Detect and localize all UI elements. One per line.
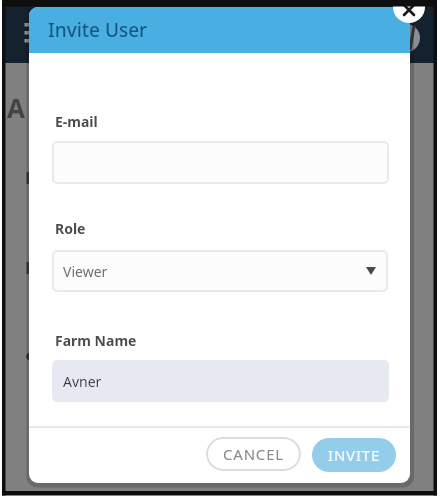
button[interactable] <box>52 141 389 184</box>
button[interactable]: Avner <box>52 360 389 402</box>
button[interactable]: INVITE <box>312 438 396 472</box>
staticText: Invite User <box>48 17 148 43</box>
staticText: Viewer <box>63 262 108 281</box>
button[interactable]: CANCEL <box>206 437 301 471</box>
button[interactable] <box>393 0 425 23</box>
staticText: E-mail <box>55 112 98 131</box>
button[interactable]: Viewer <box>52 250 388 292</box>
staticText: Avner <box>63 372 102 391</box>
staticText: Farm Name <box>55 331 137 350</box>
staticText: Role <box>55 219 86 238</box>
staticText: A <box>7 90 25 125</box>
staticText: CANCEL <box>223 444 284 464</box>
staticText: INVITE <box>328 445 381 465</box>
